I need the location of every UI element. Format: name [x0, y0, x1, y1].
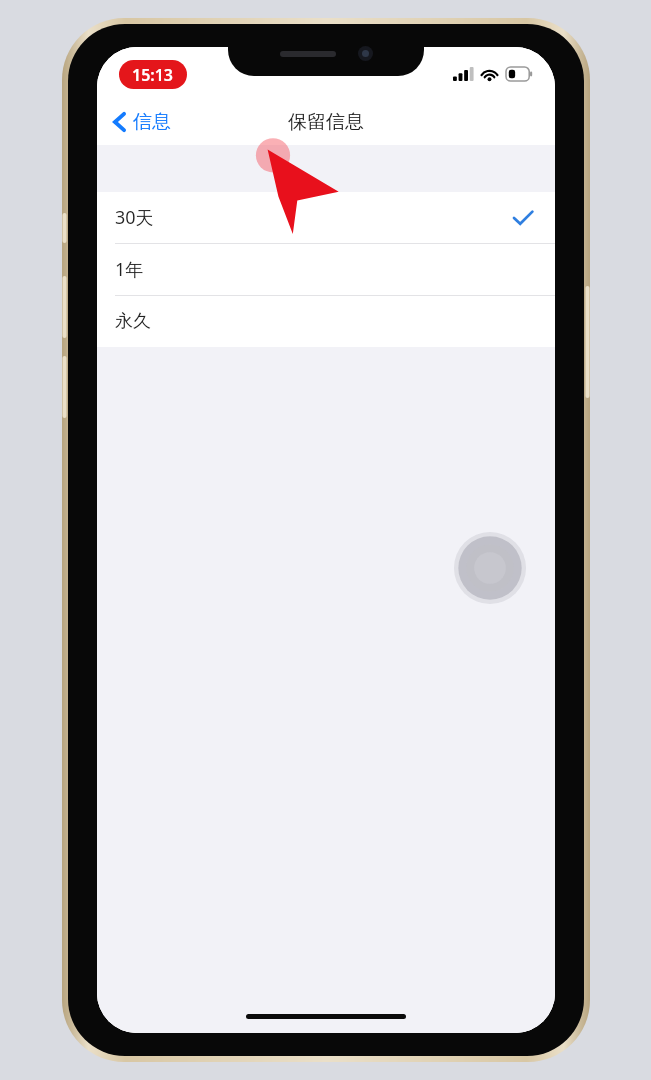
button[interactable]: 永久	[97, 296, 555, 347]
button[interactable]: 30天	[97, 192, 555, 244]
staticText: 30天	[115, 205, 154, 230]
staticText: 1年	[115, 257, 144, 282]
button[interactable]: AssistiveTouch	[454, 532, 526, 604]
staticText: 保留信息	[288, 110, 364, 134]
staticText: 永久	[115, 310, 151, 333]
button[interactable]: 信息	[107, 106, 177, 138]
staticText: 15:13	[132, 64, 174, 86]
staticText: 信息	[133, 110, 171, 134]
button[interactable]: 1年	[97, 244, 555, 296]
